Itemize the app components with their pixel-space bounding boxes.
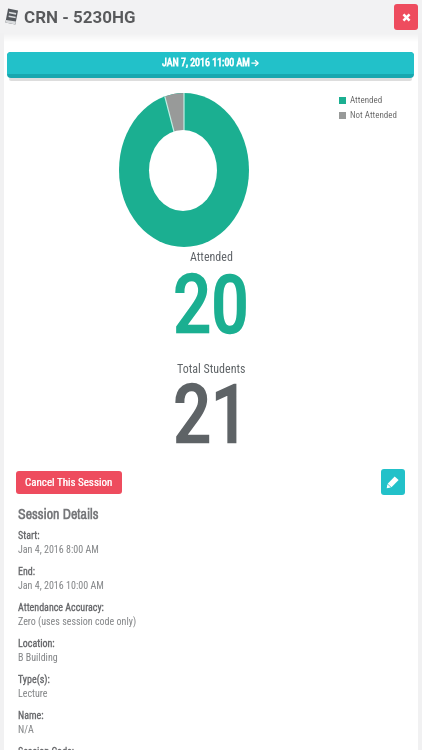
- button[interactable]: Cancel This Session: [16, 471, 122, 494]
- staticText: N/A: [18, 724, 34, 736]
- staticText: 20: [173, 259, 249, 352]
- staticText: Attendance Accuracy:: [18, 602, 104, 614]
- staticText: Jan 4, 2016 8:00 AM: [18, 544, 99, 556]
- staticText: Cancel This Session: [25, 476, 113, 489]
- staticText: JAN 7, 2016 11:00 AM: [162, 57, 250, 69]
- staticText: B Building: [18, 652, 58, 664]
- staticText: Attended: [350, 95, 383, 106]
- staticText: Attended: [190, 250, 233, 264]
- staticText: Jan 4, 2016 10:00 AM: [18, 580, 104, 592]
- staticText: Session Code:: [18, 746, 75, 750]
- staticText: Total Students: [177, 362, 246, 376]
- staticText: 21: [173, 369, 249, 462]
- staticText: CRN - 5230HG: [24, 7, 136, 27]
- staticText: Lecture: [18, 688, 48, 700]
- staticText: Name:: [18, 710, 44, 722]
- staticText: Type(s):: [18, 674, 50, 686]
- staticText: Zero (uses session code only): [18, 616, 137, 628]
- staticText: Start:: [18, 530, 40, 542]
- button[interactable]: JAN 7, 2016 11:00 AM: [7, 52, 414, 78]
- staticText: End:: [18, 566, 36, 578]
- button[interactable]: Close: [394, 4, 418, 30]
- staticText: Session Details: [18, 505, 99, 524]
- staticText: Not Attended: [350, 110, 397, 121]
- button[interactable]: Edit: [381, 469, 405, 495]
- staticText: Location:: [18, 638, 55, 650]
